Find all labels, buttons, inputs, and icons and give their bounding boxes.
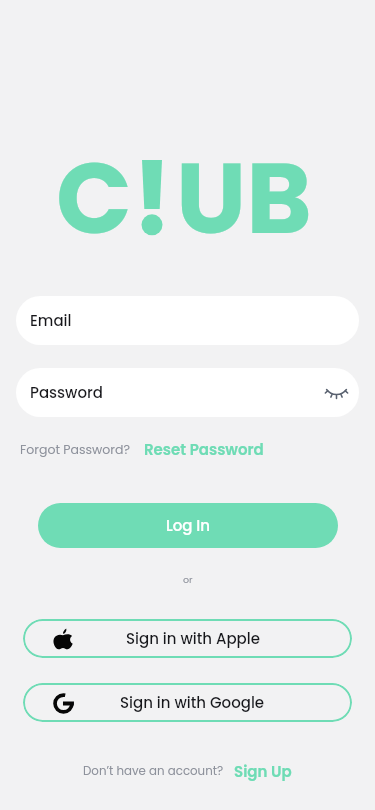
button[interactable]: Password bbox=[16, 368, 359, 417]
staticText: UB bbox=[176, 129, 312, 268]
staticText: Forgot Password? bbox=[20, 441, 130, 458]
staticText: Reset Password bbox=[144, 439, 264, 460]
button[interactable]: Show password bbox=[323, 379, 349, 405]
button[interactable]: Email bbox=[16, 296, 359, 345]
staticText: Password bbox=[30, 382, 103, 403]
staticText: Sign in with Google bbox=[120, 692, 265, 713]
staticText: or bbox=[183, 573, 193, 586]
staticText: Sign in with Apple bbox=[126, 628, 260, 649]
staticText: Log In bbox=[166, 515, 210, 536]
button[interactable]: Reset Password bbox=[144, 439, 264, 460]
button[interactable]: Sign Up bbox=[234, 761, 292, 782]
staticText: Don’t have an account? bbox=[83, 763, 224, 780]
staticText: Email bbox=[30, 310, 72, 331]
staticText: Sign Up bbox=[234, 761, 292, 782]
button[interactable]: Log In bbox=[38, 503, 338, 548]
button[interactable]: Sign in with Google bbox=[23, 683, 352, 722]
staticText: C bbox=[56, 129, 132, 268]
button[interactable]: Sign in with Apple bbox=[23, 619, 352, 658]
